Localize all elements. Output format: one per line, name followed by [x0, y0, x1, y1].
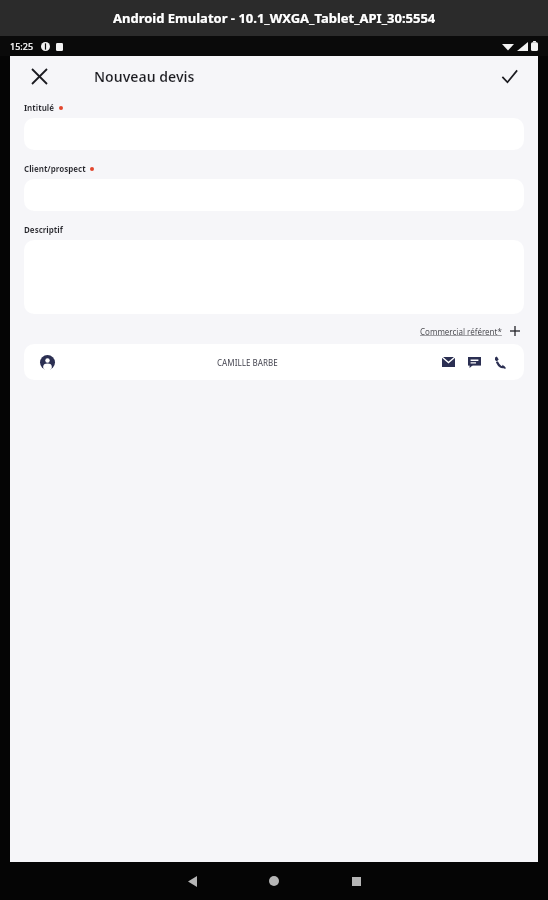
button[interactable]: Envoyer un message [464, 352, 484, 372]
button[interactable]: Accueil [251, 862, 297, 900]
button[interactable]: Valider [492, 59, 526, 93]
staticText: Nouveau devis [94, 67, 195, 86]
button[interactable]: CAMILLE BARBE [24, 344, 524, 380]
button[interactable]: Appeler [490, 352, 510, 372]
button[interactable]: Commercial référent* [420, 324, 522, 338]
button[interactable]: Fermer [22, 59, 56, 93]
staticText: Commercial référent* [420, 326, 502, 337]
button[interactable]: Envoyer un email [438, 352, 458, 372]
staticText: Client/prospect [24, 163, 86, 174]
staticText: CAMILLE BARBE [217, 357, 278, 368]
button[interactable]: Applications récentes [333, 862, 379, 900]
button[interactable]: Retour [169, 862, 215, 900]
staticText: Intitulé [24, 102, 55, 113]
staticText: Android Emulator - 10.1_WXGA_Tablet_API_… [113, 9, 436, 27]
other: Ajouter un commercial référent [508, 324, 522, 338]
staticText: Descriptif [24, 224, 63, 235]
staticText: 15:25 [10, 40, 34, 52]
